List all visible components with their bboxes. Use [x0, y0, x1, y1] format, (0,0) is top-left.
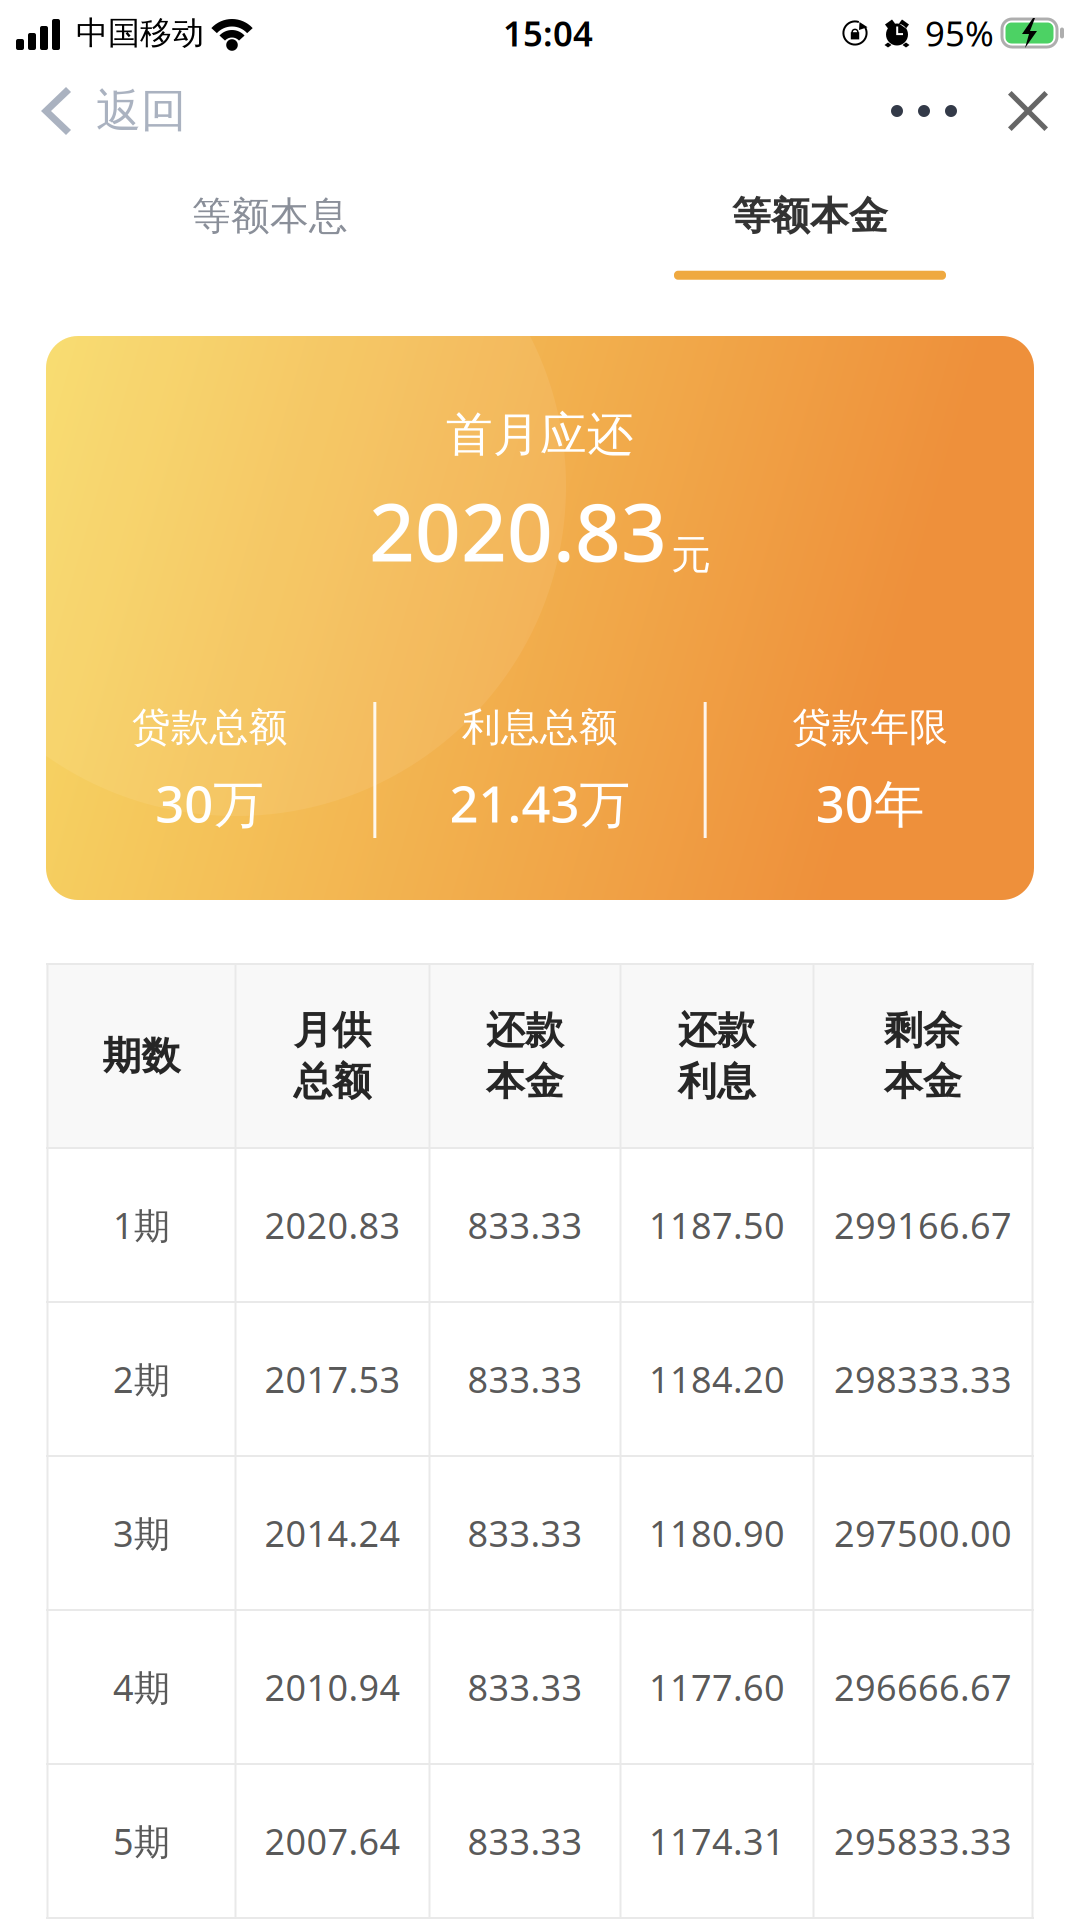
staticText: 833.33 [467, 1509, 582, 1557]
staticText: 还款 [486, 1006, 564, 1054]
staticText: 95% [925, 10, 994, 56]
staticText: 4期 [113, 1663, 170, 1711]
staticText: 2014.24 [264, 1509, 400, 1557]
staticText: 298333.33 [834, 1355, 1012, 1403]
button[interactable]: 等额本息 [0, 156, 540, 276]
staticText: 元 [671, 530, 711, 579]
staticText: 1184.20 [649, 1355, 785, 1403]
staticText: 1180.90 [649, 1509, 785, 1557]
staticText: 剩余 [884, 1006, 962, 1054]
staticText: 贷款年限 [792, 704, 948, 751]
button[interactable]: 返回 [0, 66, 210, 156]
staticText: 贷款总额 [132, 704, 288, 751]
staticText: 833.33 [467, 1201, 582, 1249]
staticText: 299166.67 [834, 1201, 1012, 1249]
staticText: 15:04 [503, 10, 593, 56]
staticText: 2007.64 [264, 1817, 400, 1865]
staticText: 1期 [113, 1201, 170, 1249]
staticText: 本金 [884, 1058, 962, 1105]
staticText: 首月应还 [446, 406, 634, 463]
staticText: 30万 [155, 769, 264, 836]
staticText: 还款 [678, 1006, 756, 1054]
staticText: 期数 [102, 1032, 180, 1080]
staticText: 中国移动 [76, 13, 204, 53]
staticText: 利息 [678, 1058, 756, 1105]
button[interactable]: More options [872, 66, 976, 156]
staticText: 833.33 [467, 1355, 582, 1403]
staticText: 1174.31 [649, 1817, 785, 1865]
staticText: 2020.83 [369, 477, 667, 583]
staticText: 2017.53 [264, 1355, 400, 1403]
staticText: 1177.60 [649, 1663, 785, 1711]
button[interactable]: 等额本金 [540, 156, 1080, 276]
staticText: 2020.83 [264, 1201, 400, 1249]
staticText: 833.33 [467, 1663, 582, 1711]
staticText: 月供 [293, 1006, 371, 1054]
staticText: 等额本金 [732, 192, 888, 240]
staticText: 利息总额 [462, 704, 618, 751]
staticText: 833.33 [467, 1817, 582, 1865]
staticText: 30年 [816, 769, 925, 836]
staticText: 5期 [113, 1817, 170, 1865]
staticText: 1187.50 [649, 1201, 785, 1249]
staticText: 21.43万 [449, 769, 630, 836]
staticText: 2期 [113, 1355, 170, 1403]
staticText: 296666.67 [834, 1663, 1012, 1711]
staticText: 本金 [486, 1058, 564, 1105]
staticText: 2010.94 [264, 1663, 400, 1711]
staticText: 297500.00 [834, 1509, 1012, 1557]
staticText: 295833.33 [834, 1817, 1012, 1865]
staticText: 总额 [293, 1058, 371, 1105]
staticText: 3期 [113, 1509, 170, 1557]
button[interactable]: Close [976, 66, 1080, 156]
staticText: 返回 [96, 83, 186, 139]
staticText: 等额本息 [192, 192, 348, 240]
